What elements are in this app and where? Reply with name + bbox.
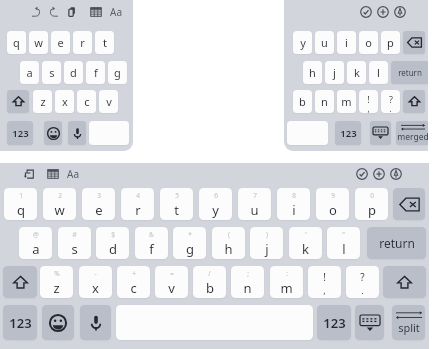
- button[interactable]: 4: [121, 188, 154, 220]
- button[interactable]: h: [303, 61, 322, 84]
- staticText: l: [377, 65, 380, 80]
- button[interactable]: 3: [82, 188, 115, 220]
- button[interactable]: Backspace: [403, 31, 425, 54]
- staticText: a: [32, 240, 40, 258]
- button[interactable]: Shift: [383, 266, 426, 298]
- button[interactable]: 9: [316, 188, 349, 220]
- button[interactable]: return: [367, 227, 426, 259]
- button[interactable]: Accept: [354, 166, 370, 181]
- button[interactable]: Paste: [64, 4, 80, 19]
- button[interactable]: e: [51, 31, 70, 54]
- button[interactable]: 123: [3, 305, 37, 340]
- button[interactable]: ): [250, 227, 283, 259]
- button[interactable]: i: [337, 31, 356, 54]
- button[interactable]: Add: [371, 166, 387, 181]
- button[interactable]: s: [42, 61, 61, 84]
- button[interactable]: -: [79, 266, 112, 298]
- button[interactable]: o: [359, 31, 378, 54]
- button[interactable]: Shift: [3, 266, 37, 298]
- button[interactable]: ": [327, 227, 360, 259]
- button[interactable]: g: [108, 61, 127, 84]
- button[interactable]: !: [359, 90, 378, 113]
- button[interactable]: +: [117, 266, 150, 298]
- button[interactable]: 6: [199, 188, 232, 220]
- button[interactable]: =: [155, 266, 188, 298]
- staticText: t: [174, 201, 179, 219]
- button[interactable]: Undo: [28, 4, 44, 19]
- button[interactable]: Add: [375, 4, 391, 19]
- button[interactable]: 123: [335, 121, 361, 145]
- button[interactable]: Paste: [21, 166, 37, 181]
- button[interactable]: $: [96, 227, 129, 259]
- button[interactable]: m: [337, 90, 356, 113]
- button[interactable]: Emoji: [44, 121, 62, 145]
- button[interactable]: Shift: [403, 90, 425, 113]
- button[interactable]: /: [193, 266, 226, 298]
- button[interactable]: !: [308, 266, 341, 298]
- staticText: b: [299, 94, 306, 109]
- button[interactable]: *: [173, 227, 206, 259]
- button[interactable]: %: [40, 266, 73, 298]
- button[interactable]: x: [55, 90, 74, 113]
- button[interactable]: n: [315, 90, 334, 113]
- button[interactable]: 7: [238, 188, 271, 220]
- button[interactable]: Hide keyboard: [355, 305, 384, 340]
- staticText: r: [135, 201, 141, 219]
- button[interactable]: q: [7, 31, 26, 54]
- button[interactable]: 5: [160, 188, 193, 220]
- button[interactable]: z: [33, 90, 52, 113]
- button[interactable]: 123: [317, 305, 351, 340]
- button[interactable]: Redo: [46, 4, 62, 19]
- button[interactable]: &: [135, 227, 168, 259]
- button[interactable]: a: [20, 61, 39, 84]
- button[interactable]: (: [212, 227, 245, 259]
- button[interactable]: c: [77, 90, 96, 113]
- button[interactable]: Table: [45, 166, 61, 181]
- button[interactable]: return: [391, 61, 428, 84]
- button[interactable]: @: [19, 227, 52, 259]
- button[interactable]: Split keyboard: [392, 305, 425, 340]
- button[interactable]: 123: [7, 121, 33, 145]
- button[interactable]: y: [293, 31, 312, 54]
- button[interactable]: Draw: [388, 166, 404, 181]
- button[interactable]: Shift: [7, 90, 29, 113]
- button[interactable]: ?: [346, 266, 379, 298]
- staticText: @: [33, 230, 39, 239]
- button[interactable]: Draw: [392, 4, 408, 19]
- button[interactable]: Aa: [64, 166, 81, 181]
- button[interactable]: Accept: [358, 4, 374, 19]
- button[interactable]: 0: [355, 188, 388, 220]
- button[interactable]: k: [347, 61, 366, 84]
- button[interactable]: 8: [277, 188, 310, 220]
- button[interactable]: u: [315, 31, 334, 54]
- button[interactable]: f: [86, 61, 105, 84]
- button[interactable]: 1: [4, 188, 37, 220]
- button[interactable]: r: [73, 31, 92, 54]
- button[interactable]: Dictate: [80, 305, 111, 340]
- button[interactable]: 2: [43, 188, 76, 220]
- button[interactable]: b: [293, 90, 312, 113]
- button[interactable]: [89, 121, 129, 145]
- button[interactable]: Table: [88, 4, 104, 19]
- button[interactable]: Aa: [108, 4, 124, 19]
- button[interactable]: Backspace: [393, 188, 425, 220]
- button[interactable]: ;: [231, 266, 264, 298]
- button[interactable]: :: [270, 266, 303, 298]
- button[interactable]: Emoji: [42, 305, 74, 340]
- button[interactable]: Dictate: [68, 121, 86, 145]
- button[interactable]: Merge keyboard: [396, 121, 428, 145]
- button[interactable]: d: [64, 61, 83, 84]
- button[interactable]: Hide keyboard: [370, 121, 391, 145]
- button[interactable]: w: [29, 31, 48, 54]
- button[interactable]: p: [381, 31, 400, 54]
- button[interactable]: v: [99, 90, 118, 113]
- button[interactable]: j: [325, 61, 344, 84]
- button[interactable]: l: [369, 61, 388, 84]
- staticText: n: [243, 279, 252, 297]
- button[interactable]: [287, 121, 328, 145]
- button[interactable]: ?: [381, 90, 400, 113]
- button[interactable]: t: [95, 31, 114, 54]
- button[interactable]: ': [289, 227, 322, 259]
- button[interactable]: #: [58, 227, 91, 259]
